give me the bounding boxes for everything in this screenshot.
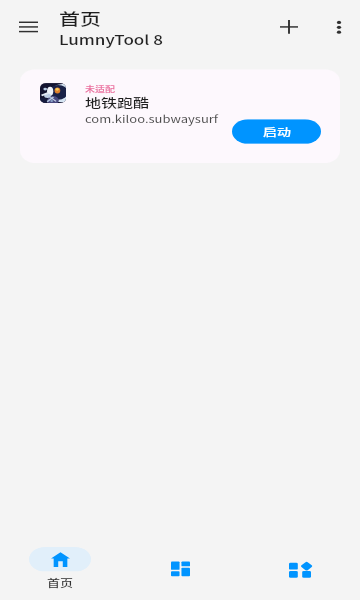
staticText: 首页 [59,6,101,29]
button[interactable]: Add [270,12,308,41]
staticText: LumnyTool 8 [59,29,163,48]
button[interactable]: 首页 [0,538,120,600]
staticText: 启动 [263,124,291,139]
button[interactable]: More options [320,12,358,41]
button[interactable]: Menu [9,12,47,41]
staticText: 未适配 [85,82,115,93]
button[interactable]: Tab [240,538,360,600]
button[interactable]: 未适配 [20,69,340,163]
button[interactable]: 启动 [232,119,321,144]
staticText: 首页 [47,575,74,590]
button[interactable]: Tab [120,538,240,600]
staticText: 地铁跑酷 [85,93,150,111]
staticText: com.kiloo.subwaysurf [85,111,219,126]
